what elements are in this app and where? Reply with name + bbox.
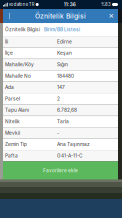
button[interactable]: Favorilere ekle bbox=[3, 161, 118, 179]
staticText: Mahalle/Köy bbox=[5, 62, 34, 67]
staticText: Tarla bbox=[57, 119, 69, 124]
staticText: Öznitelik Bilgisi bbox=[35, 12, 86, 20]
staticText: Pafta bbox=[5, 153, 18, 159]
button[interactable]: Menu bbox=[4, 9, 15, 23]
staticText: ✕ bbox=[108, 12, 114, 20]
button[interactable]: Öznitelik Bilgisi bbox=[5, 27, 40, 32]
staticText: G41-A-11-C bbox=[57, 153, 83, 159]
staticText: Favorilere ekle bbox=[43, 167, 78, 173]
staticText: 11:36 bbox=[64, 2, 76, 7]
staticText: Keşan bbox=[57, 50, 72, 56]
staticText: Ana Taşınmaz bbox=[57, 141, 90, 147]
staticText: %83 bbox=[101, 2, 112, 7]
staticText: 6.782,68 bbox=[57, 107, 77, 113]
staticText: - bbox=[57, 130, 59, 136]
staticText: İli bbox=[5, 39, 8, 45]
staticText: Birim/BB Listesi bbox=[44, 27, 80, 32]
staticText: 2 bbox=[57, 96, 60, 102]
staticText: İlçe bbox=[5, 50, 13, 56]
staticText: Sığın bbox=[57, 62, 68, 67]
staticText: Mahalle No bbox=[5, 73, 31, 79]
staticText: Mevkii bbox=[5, 130, 20, 136]
staticText: Öznitelik Bilgisi bbox=[5, 27, 40, 32]
staticText: Zemin Tip bbox=[5, 141, 27, 147]
staticText: 147 bbox=[57, 84, 65, 90]
staticText: vodafone TR bbox=[8, 2, 36, 7]
staticText: Edirne bbox=[57, 39, 72, 45]
button[interactable]: Close bbox=[106, 9, 117, 23]
staticText: Parsel bbox=[5, 96, 20, 102]
button[interactable]: Birim/BB Listesi bbox=[44, 27, 80, 32]
staticText: 184480 bbox=[57, 73, 74, 79]
staticText: Ada bbox=[5, 84, 14, 90]
staticText: Tapu Alanı bbox=[5, 107, 29, 113]
staticText: Nitelik bbox=[5, 119, 20, 124]
